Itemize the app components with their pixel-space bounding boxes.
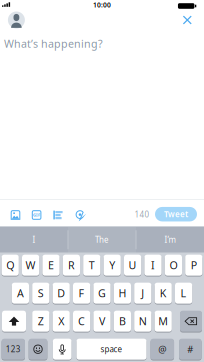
staticText: D — [57, 286, 65, 300]
staticText: M — [158, 314, 168, 328]
staticText: # — [187, 343, 193, 355]
staticText: G — [98, 286, 106, 300]
staticText: C — [78, 314, 85, 328]
staticText: A — [17, 286, 24, 300]
staticText: P — [191, 258, 197, 272]
button[interactable]: Tweet — [155, 207, 197, 221]
button[interactable]: U — [124, 255, 141, 276]
staticText: F — [79, 286, 85, 300]
staticText: The — [95, 234, 109, 245]
staticText: What’s happening? — [4, 36, 103, 51]
button[interactable]: D — [53, 283, 70, 304]
button[interactable]: Add poll — [51, 208, 65, 222]
button[interactable]: Add photo — [8, 208, 22, 222]
button[interactable]: Dictate — [53, 339, 72, 360]
staticText: space — [100, 344, 122, 354]
staticText: N — [139, 314, 147, 328]
staticText: Tweet — [164, 209, 188, 219]
button[interactable]: X — [53, 311, 70, 332]
button[interactable]: Profile — [8, 11, 25, 28]
button[interactable]: F — [73, 283, 90, 304]
button[interactable]: G — [93, 283, 111, 304]
staticText: GIF — [33, 212, 40, 218]
button[interactable]: N — [134, 311, 151, 332]
staticText: L — [181, 286, 187, 300]
button[interactable]: B — [114, 311, 131, 332]
button[interactable]: C — [73, 311, 90, 332]
button[interactable]: Emoji — [29, 339, 47, 360]
staticText: E — [48, 258, 54, 272]
staticText: U — [129, 258, 137, 272]
button[interactable]: Y — [104, 255, 121, 276]
staticText: Y — [109, 258, 115, 272]
staticText: R — [68, 258, 75, 272]
button[interactable]: The — [69, 227, 135, 252]
button[interactable]: Q — [2, 255, 19, 276]
button[interactable]: Add location — [73, 208, 87, 222]
button[interactable]: @ — [151, 339, 174, 360]
button[interactable]: I — [144, 255, 162, 276]
button[interactable]: Add GIF — [30, 208, 44, 222]
button[interactable]: I — [1, 227, 67, 252]
staticText: I’m — [164, 234, 175, 245]
staticText: I — [151, 258, 155, 272]
staticText: W — [26, 258, 36, 272]
button[interactable]: P — [185, 255, 202, 276]
button[interactable]: A — [12, 283, 29, 304]
button[interactable]: T — [83, 255, 100, 276]
staticText: @ — [158, 343, 166, 355]
staticText: H — [118, 286, 126, 300]
button[interactable]: Close — [182, 15, 192, 25]
button[interactable]: Delete — [180, 311, 202, 332]
button[interactable]: Shift — [2, 311, 26, 332]
staticText: Z — [38, 314, 44, 328]
staticText: O — [169, 258, 177, 272]
staticText: S — [38, 286, 44, 300]
button[interactable]: O — [165, 255, 182, 276]
button[interactable]: K — [155, 283, 172, 304]
button[interactable]: I’m — [137, 227, 203, 252]
button[interactable]: S — [32, 283, 49, 304]
staticText: T — [89, 258, 95, 272]
button[interactable]: R — [63, 255, 80, 276]
button[interactable]: space — [76, 339, 146, 360]
button[interactable]: Z — [32, 311, 49, 332]
staticText: Q — [6, 258, 14, 272]
button[interactable]: 123 — [2, 339, 25, 360]
button[interactable]: M — [155, 311, 172, 332]
staticText: V — [99, 314, 105, 328]
button[interactable]: L — [175, 283, 192, 304]
button[interactable]: V — [93, 311, 111, 332]
button[interactable]: W — [22, 255, 39, 276]
staticText: I — [32, 234, 35, 245]
staticText: 10:00 — [93, 1, 111, 9]
button[interactable]: # — [179, 339, 202, 360]
staticText: J — [141, 286, 144, 300]
staticText: X — [58, 314, 64, 328]
button[interactable]: H — [114, 283, 131, 304]
staticText: 123 — [6, 344, 21, 354]
button[interactable]: J — [134, 283, 151, 304]
button[interactable]: E — [42, 255, 60, 276]
staticText: K — [160, 286, 167, 300]
staticText: 140 — [134, 209, 149, 220]
staticText: B — [119, 314, 126, 328]
